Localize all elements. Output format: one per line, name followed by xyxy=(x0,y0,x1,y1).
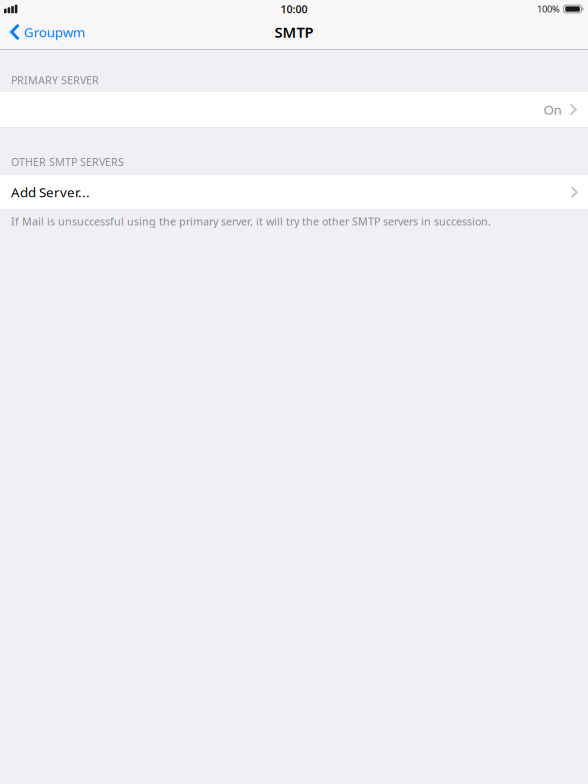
staticText: If Mail is unsuccessful using the primar… xyxy=(11,214,491,228)
staticText: 100% xyxy=(537,3,560,15)
button[interactable]: Primary Server, On xyxy=(0,92,588,127)
staticText: Groupwm xyxy=(24,23,85,41)
staticText: OTHER SMTP SERVERS xyxy=(11,155,124,169)
staticText: 10:00 xyxy=(280,2,307,16)
button[interactable]: Back to Groupwm xyxy=(0,17,96,47)
staticText: On xyxy=(543,101,561,118)
button[interactable]: Add Server... xyxy=(0,175,588,210)
staticText: Add Server... xyxy=(11,183,90,201)
staticText: SMTP xyxy=(274,22,313,42)
staticText: PRIMARY SERVER xyxy=(11,73,99,87)
